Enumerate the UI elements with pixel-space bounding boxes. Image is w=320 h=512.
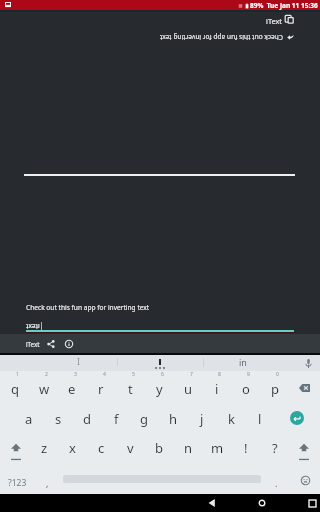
staticText: 7 — [190, 371, 193, 378]
staticText: p — [271, 380, 279, 398]
staticText: u — [184, 380, 193, 398]
button[interactable]: Shift — [295, 440, 313, 458]
button[interactable]: Share — [47, 340, 55, 348]
button[interactable]: iText — [26, 340, 40, 348]
button[interactable]: Emoji — [295, 470, 315, 490]
button[interactable]: Backspace — [299, 384, 310, 392]
button[interactable]: r — [87, 375, 115, 403]
staticText: 4 — [103, 371, 106, 378]
staticText: d — [83, 410, 91, 428]
button[interactable]: Info — [65, 340, 73, 348]
staticText: f — [114, 410, 119, 428]
button[interactable]: j — [188, 405, 216, 433]
button[interactable]: w — [30, 375, 58, 403]
button[interactable]: b — [145, 434, 173, 462]
button[interactable]: d — [73, 405, 101, 433]
staticText: x — [69, 439, 76, 457]
button[interactable]: m — [203, 434, 231, 462]
button[interactable]: I — [40, 353, 116, 371]
staticText: s — [55, 410, 62, 428]
staticText: q — [11, 380, 19, 398]
button[interactable]: ?123 — [2, 472, 32, 494]
button[interactable]: a — [15, 405, 43, 433]
staticText: 0 — [276, 371, 279, 378]
button[interactable]: t — [116, 375, 144, 403]
staticText: . — [275, 477, 278, 489]
button[interactable]: iText — [266, 15, 294, 26]
button[interactable]: i — [203, 375, 231, 403]
button[interactable]: l — [246, 405, 274, 433]
staticText: , — [46, 477, 49, 489]
button[interactable]: n — [174, 434, 202, 462]
button[interactable]: Enter — [290, 411, 304, 425]
staticText: iText — [266, 16, 282, 26]
staticText: r — [98, 380, 104, 398]
staticText: 89% Tue Jan 11 15:36 — [250, 1, 318, 10]
staticText: h — [169, 410, 178, 428]
button[interactable]: Switch keyboard — [250, 494, 320, 512]
button[interactable]: z — [30, 434, 58, 462]
button[interactable]: Home — [102, 494, 320, 512]
button[interactable]: in — [203, 353, 283, 371]
button[interactable]: g — [130, 405, 158, 433]
button[interactable]: v — [116, 434, 144, 462]
staticText: I — [77, 356, 80, 368]
button[interactable]: Voice input — [298, 357, 318, 369]
staticText: w — [39, 380, 50, 398]
staticText: ʇxǝʇı — [26, 321, 40, 330]
button[interactable]: s — [44, 405, 72, 433]
staticText: 3 — [74, 371, 77, 378]
button[interactable]: y — [145, 375, 173, 403]
button[interactable]: Recent apps — [152, 494, 320, 512]
staticText: y — [156, 380, 163, 398]
staticText: i — [215, 380, 219, 398]
staticText: v — [127, 439, 134, 457]
button[interactable]: q — [1, 375, 29, 403]
button[interactable]: ? — [261, 434, 289, 462]
button[interactable]: h — [159, 405, 187, 433]
staticText: 9 — [247, 371, 250, 378]
staticText: o — [242, 380, 250, 398]
button[interactable]: Check out this fun app for inverting tex… — [159, 33, 294, 42]
button[interactable]: u — [174, 375, 202, 403]
button[interactable]: , — [37, 472, 57, 494]
staticText: j — [200, 410, 204, 428]
button[interactable]: p — [261, 375, 289, 403]
button[interactable] — [117, 353, 202, 371]
staticText: z — [41, 439, 48, 457]
button[interactable]: . — [267, 472, 286, 494]
staticText: c — [98, 439, 105, 457]
staticText: Check out this fun app for inverting tex… — [26, 303, 150, 312]
staticText: 1 — [16, 371, 19, 378]
button[interactable]: o — [232, 375, 260, 403]
staticText: in — [239, 356, 247, 368]
button[interactable]: Shift — [7, 440, 25, 458]
button[interactable]: f — [102, 405, 130, 433]
staticText: n — [184, 439, 193, 457]
staticText: 6 — [161, 371, 164, 378]
staticText: b — [155, 439, 163, 457]
button[interactable]: e — [58, 375, 86, 403]
button[interactable]: Back — [52, 494, 320, 512]
button[interactable]: c — [87, 434, 115, 462]
staticText: l — [258, 410, 262, 428]
staticText: ! — [244, 439, 248, 457]
staticText: k — [228, 410, 235, 428]
staticText: e — [68, 380, 76, 398]
staticText: m — [211, 439, 224, 457]
staticText: Check out this fun app for inverting tex… — [159, 33, 283, 42]
staticText: 8 — [218, 371, 221, 378]
staticText: ?123 — [8, 477, 27, 489]
staticText: 2 — [45, 371, 48, 378]
button[interactable]: ! — [232, 434, 260, 462]
button[interactable]: x — [58, 434, 86, 462]
button[interactable]: k — [217, 405, 245, 433]
button[interactable]: Close keyboard — [202, 494, 320, 512]
staticText: 5 — [132, 371, 135, 378]
staticText: a — [25, 410, 33, 428]
staticText: g — [140, 410, 148, 428]
staticText: t — [128, 380, 133, 398]
staticText: ? — [272, 439, 278, 457]
